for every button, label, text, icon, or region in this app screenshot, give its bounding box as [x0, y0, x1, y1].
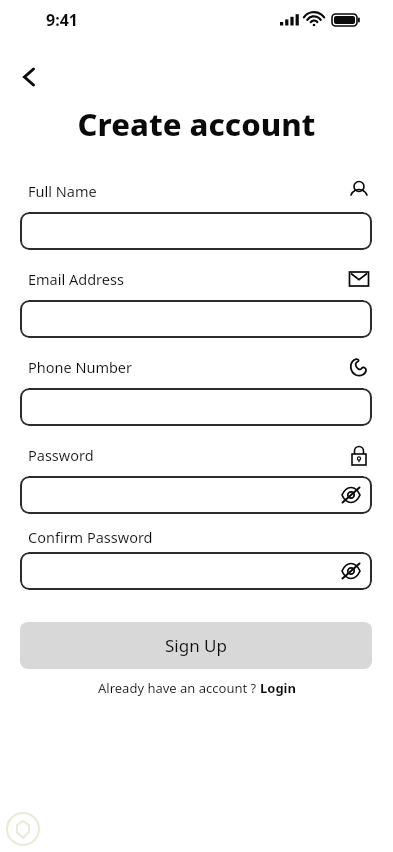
button[interactable]: Email [346, 268, 372, 290]
staticText: Login [260, 679, 296, 697]
button[interactable]: Show password [20, 476, 372, 514]
button[interactable]: Show password [338, 482, 364, 508]
staticText: Email Address [28, 269, 124, 289]
staticText: Full Name [28, 181, 97, 201]
button[interactable]: Full name [346, 180, 372, 202]
button[interactable]: Password [346, 444, 372, 466]
button[interactable]: Show password [338, 558, 364, 584]
button[interactable] [20, 388, 372, 426]
staticText: Already have an account ? [98, 679, 260, 697]
staticText: 9:41 [46, 9, 78, 31]
button[interactable]: Sign Up [20, 622, 372, 669]
button[interactable]: Already have an account ? [98, 679, 296, 697]
button[interactable]: Phone [346, 356, 372, 378]
button[interactable] [20, 212, 372, 250]
button[interactable]: Back [12, 61, 44, 93]
staticText: Confirm Password [28, 527, 153, 547]
staticText: Phone Number [28, 357, 133, 377]
staticText: Create account [0, 103, 393, 145]
button[interactable]: Show password [20, 552, 372, 590]
staticText: Password [28, 445, 94, 465]
button[interactable] [20, 300, 372, 338]
staticText: Sign Up [165, 634, 227, 657]
